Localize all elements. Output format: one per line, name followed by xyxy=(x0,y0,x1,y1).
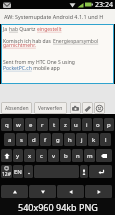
button[interactable]: r xyxy=(37,118,48,131)
staticText: 23:24 xyxy=(95,0,113,9)
button[interactable]: x xyxy=(24,149,35,162)
staticText: z xyxy=(64,121,67,129)
staticText: g xyxy=(56,136,60,144)
button[interactable]: b xyxy=(60,149,71,162)
staticText: y xyxy=(16,152,20,160)
staticText: s xyxy=(20,136,23,144)
button[interactable]: u xyxy=(71,118,81,131)
staticText: w xyxy=(16,121,21,129)
button[interactable]: p xyxy=(104,118,114,131)
staticText: d xyxy=(32,136,36,144)
staticText: ☺ xyxy=(4,165,10,171)
staticText: Verwerfen xyxy=(38,105,63,112)
button[interactable]: t xyxy=(49,118,59,131)
button[interactable]: ☺ xyxy=(1,165,12,178)
staticText: AW: Systemupdate Android 4.1.1 und H xyxy=(4,13,104,20)
button[interactable]: n xyxy=(72,149,83,162)
staticText: garnichtmehr. xyxy=(3,42,36,49)
button[interactable]: m xyxy=(84,149,95,162)
button[interactable]: Enter xyxy=(89,165,112,178)
button[interactable]: d xyxy=(28,133,39,146)
button[interactable]: l xyxy=(100,133,111,146)
button[interactable]: Attach file xyxy=(82,102,93,114)
button[interactable]: Ja xyxy=(3,24,112,84)
button[interactable]: v xyxy=(48,149,59,162)
button[interactable]: a xyxy=(4,133,15,146)
staticText: Ja xyxy=(3,26,9,33)
button[interactable]: j xyxy=(76,133,87,146)
staticText: k xyxy=(92,136,96,144)
button[interactable]: Voice input xyxy=(80,165,88,178)
button[interactable]: EN xyxy=(13,165,23,178)
staticText: c xyxy=(40,152,43,160)
staticText: u xyxy=(74,121,78,129)
button[interactable]: Shift xyxy=(1,149,12,162)
staticText: Energiesparsymbol xyxy=(53,38,99,45)
button[interactable]: Right xyxy=(85,185,112,198)
staticText: f xyxy=(44,136,47,144)
staticText: PocketPC.ch xyxy=(3,65,32,72)
staticText: a xyxy=(8,136,12,144)
staticText: l xyxy=(105,136,107,144)
button[interactable]: f xyxy=(40,133,51,146)
button[interactable]: Down xyxy=(29,185,56,198)
button[interactable]: Comma xyxy=(24,165,33,178)
button[interactable]: Backspace xyxy=(96,149,112,162)
button[interactable]: k xyxy=(88,133,99,146)
button[interactable]: q xyxy=(1,118,12,131)
button[interactable]: e xyxy=(25,118,36,131)
button[interactable]: Verwerfen xyxy=(34,102,67,114)
staticText: x xyxy=(28,152,32,160)
staticText: Quartz xyxy=(18,26,37,33)
staticText: r xyxy=(41,121,44,129)
staticText: j xyxy=(81,136,83,144)
staticText: q xyxy=(5,121,9,129)
staticText: 12# xyxy=(2,171,11,178)
button[interactable]: c xyxy=(36,149,47,162)
button[interactable]: s xyxy=(16,133,27,146)
staticText: 540x960 94kb PNG xyxy=(18,201,98,213)
button[interactable]: Absenden xyxy=(1,102,32,114)
staticText: h xyxy=(68,136,72,144)
staticText: o xyxy=(96,121,100,129)
button[interactable]: g xyxy=(52,133,63,146)
staticText: v xyxy=(52,152,56,160)
staticText: e xyxy=(29,121,33,129)
staticText: b xyxy=(64,152,68,160)
button[interactable]: h xyxy=(64,133,75,146)
button[interactable]: AW: Systemupdate Android 4.1.1 und H xyxy=(4,9,114,24)
button[interactable]: Insert emoticon xyxy=(94,102,105,114)
staticText: t xyxy=(53,121,56,129)
staticText: i xyxy=(86,121,88,129)
button[interactable]: Up xyxy=(1,185,28,198)
button[interactable]: z xyxy=(60,118,70,131)
staticText: Sent from my HTC One S using xyxy=(3,59,75,66)
button[interactable]: Insert picture xyxy=(70,102,81,114)
staticText: n xyxy=(76,152,80,160)
staticText: Komisch ich hab das xyxy=(3,38,53,45)
staticText: hab xyxy=(9,26,18,33)
staticText: m xyxy=(87,152,93,160)
staticText: EN xyxy=(14,168,22,176)
button[interactable]: o xyxy=(93,118,103,131)
staticText: Absenden xyxy=(5,105,29,112)
button[interactable]: y xyxy=(13,149,23,162)
staticText: p xyxy=(107,121,111,129)
staticText: eingestellt xyxy=(37,26,62,33)
button[interactable]: i xyxy=(82,118,92,131)
button[interactable]: Left xyxy=(57,185,84,198)
button[interactable]: w xyxy=(13,118,24,131)
staticText: mobile app xyxy=(32,65,60,72)
